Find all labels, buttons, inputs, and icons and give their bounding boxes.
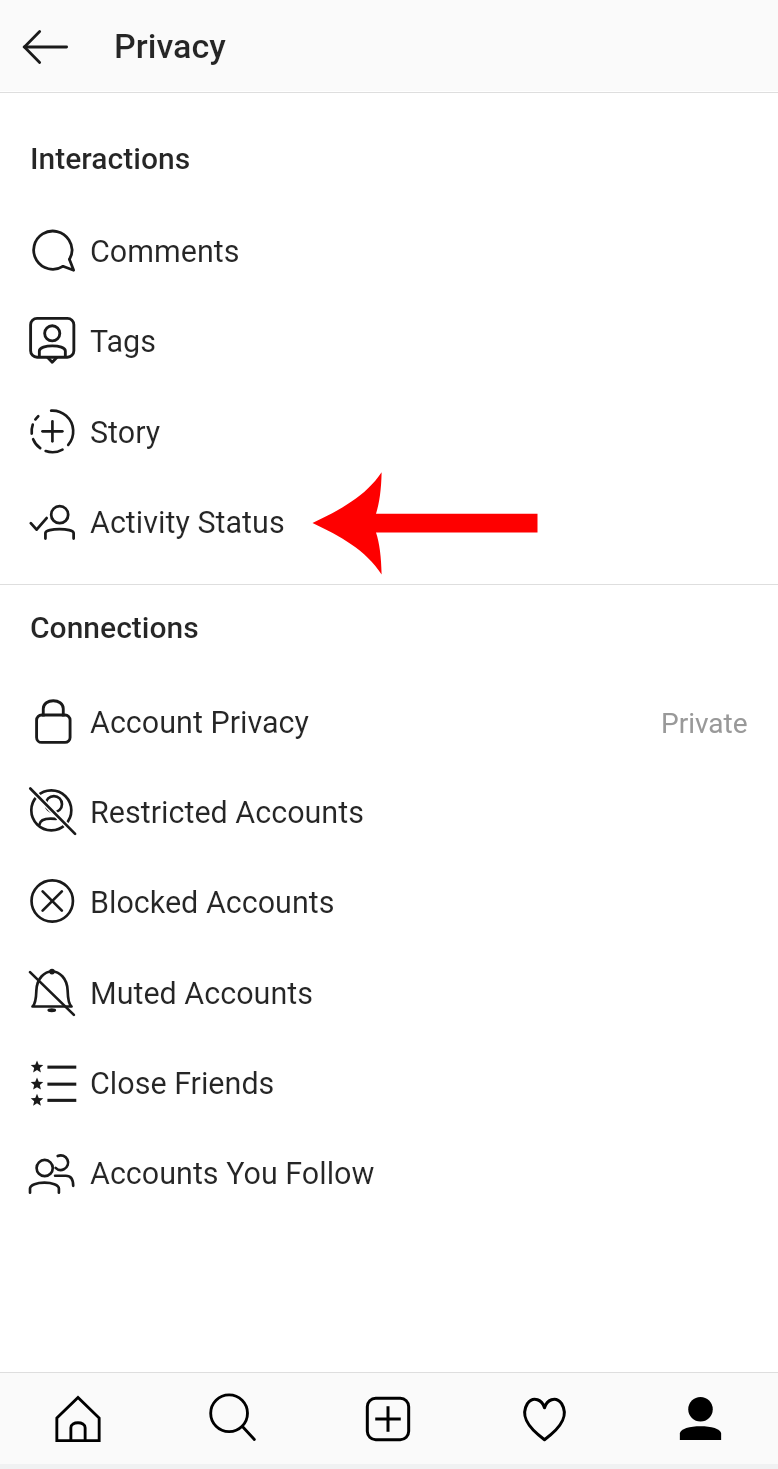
- button[interactable]: Story: [0, 386, 778, 476]
- button[interactable]: Create: [310, 1373, 466, 1464]
- staticText: Muted Accounts: [90, 976, 313, 1012]
- button[interactable]: Home: [0, 1373, 155, 1464]
- staticText: Connections: [30, 610, 199, 645]
- staticText: Accounts You Follow: [90, 1156, 375, 1192]
- button[interactable]: Back: [0, 0, 91, 91]
- button[interactable]: Restricted Accounts: [0, 766, 778, 856]
- staticText: Interactions: [30, 141, 191, 176]
- button[interactable]: Comments: [0, 205, 778, 295]
- staticText: Privacy: [114, 26, 226, 66]
- button[interactable]: Account Privacy: [0, 676, 778, 766]
- button[interactable]: Profile: [622, 1373, 778, 1464]
- button[interactable]: Close Friends: [0, 1037, 778, 1127]
- button[interactable]: Muted Accounts: [0, 947, 778, 1037]
- button[interactable]: Blocked Accounts: [0, 856, 778, 946]
- staticText: Restricted Accounts: [90, 795, 364, 831]
- staticText: Story: [90, 415, 161, 451]
- button[interactable]: Tags: [0, 295, 778, 385]
- staticText: Close Friends: [90, 1066, 275, 1102]
- staticText: Private: [661, 707, 748, 740]
- staticText: Comments: [90, 234, 240, 270]
- staticText: Tags: [90, 324, 156, 360]
- button[interactable]: Activity Status: [0, 476, 778, 566]
- staticText: Account Privacy: [90, 705, 309, 741]
- button[interactable]: Search: [155, 1373, 310, 1464]
- staticText: Activity Status: [90, 505, 285, 541]
- button[interactable]: Accounts You Follow: [0, 1127, 778, 1217]
- button[interactable]: Activity: [466, 1373, 622, 1464]
- staticText: Blocked Accounts: [90, 885, 335, 921]
